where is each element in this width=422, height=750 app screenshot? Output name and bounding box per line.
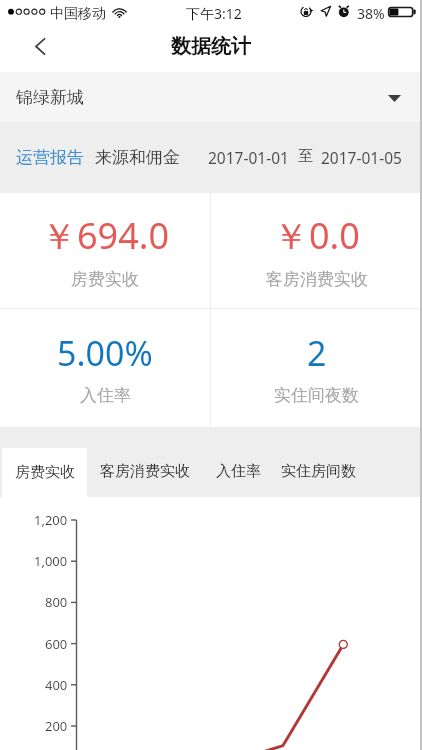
button[interactable]: 2017-01-01: [208, 147, 402, 168]
staticText: 房费实收: [15, 463, 75, 482]
staticText: 1,000: [34, 552, 68, 570]
staticText: 锦绿新城: [16, 87, 84, 108]
staticText: ￥0.0: [273, 211, 360, 260]
button[interactable]: 2: [211, 309, 422, 427]
staticText: 至: [298, 147, 313, 166]
button[interactable]: 实住房间数: [281, 462, 356, 481]
button[interactable]: ￥694.0: [0, 193, 210, 308]
staticText: 800: [45, 593, 68, 611]
button[interactable]: 入住率: [216, 462, 261, 481]
button[interactable]: 运营报告: [16, 147, 84, 168]
staticText: 中国移动: [50, 5, 106, 23]
staticText: ￥694.0: [41, 211, 170, 260]
staticText: 下午3:12: [186, 4, 242, 23]
staticText: 1,200: [34, 511, 68, 529]
button[interactable]: ￥0.0: [211, 193, 422, 308]
staticText: 实住间夜数: [274, 385, 359, 406]
staticText: 400: [45, 676, 68, 694]
button[interactable]: 客房消费实收: [100, 462, 190, 481]
staticText: 200: [45, 717, 68, 735]
button[interactable]: 来源和佣金: [95, 147, 180, 168]
staticText: 数据统计: [171, 34, 251, 59]
staticText: 38%: [357, 4, 385, 23]
staticText: 2: [307, 330, 327, 376]
button[interactable]: 5.00%: [0, 309, 210, 427]
staticText: 2017-01-05: [321, 147, 402, 168]
staticText: 2017-01-01: [208, 147, 289, 168]
button[interactable]: 锦绿新城: [0, 72, 422, 122]
button[interactable]: 房费实收: [2, 448, 87, 497]
staticText: 600: [45, 635, 68, 653]
staticText: 5.00%: [57, 330, 153, 376]
staticText: 客房消费实收: [266, 269, 368, 290]
button[interactable]: Back: [22, 36, 50, 64]
staticText: 入住率: [80, 385, 131, 406]
staticText: 房费实收: [71, 269, 139, 290]
